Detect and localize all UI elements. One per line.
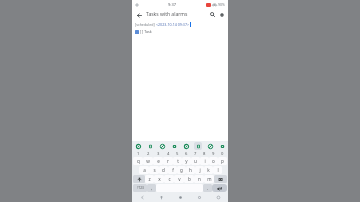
staticText: b	[188, 176, 191, 182]
button[interactable]: n	[194, 175, 204, 183]
staticText: t	[177, 158, 179, 164]
staticText: 4	[167, 151, 170, 157]
button[interactable]: u	[191, 157, 200, 165]
staticText: s	[153, 167, 156, 173]
button[interactable]: o	[209, 157, 218, 165]
button[interactable]: Emoji suggestion	[218, 142, 226, 150]
button[interactable]: 2	[143, 150, 153, 157]
staticText: w	[146, 158, 150, 164]
button[interactable]: h	[186, 166, 195, 174]
button[interactable]: Resize	[209, 193, 228, 202]
button[interactable]: e	[153, 157, 163, 165]
button[interactable]: 6	[182, 150, 191, 157]
button[interactable]: Emoji suggestion	[170, 142, 178, 150]
staticText: 8	[203, 151, 206, 157]
button[interactable]: 3	[153, 150, 163, 157]
button[interactable]: s	[149, 166, 159, 174]
staticText: d	[162, 167, 165, 173]
staticText: .	[207, 185, 209, 191]
button[interactable]: Keyboard switch	[132, 193, 152, 202]
button[interactable]: 9	[209, 150, 218, 157]
button[interactable]: j	[195, 166, 204, 174]
staticText: a	[143, 167, 146, 173]
staticText: 90%	[218, 2, 225, 7]
button[interactable]: 8	[200, 150, 209, 157]
staticText: Tasks with alarms	[146, 11, 188, 18]
button[interactable]: i	[200, 157, 209, 165]
button[interactable]: More options	[217, 10, 226, 19]
button[interactable]: c	[164, 175, 174, 183]
button[interactable]: Emoji suggestion	[146, 142, 154, 150]
staticText: [scheduled]	[135, 22, 156, 27]
button[interactable]: p	[218, 157, 227, 165]
staticText: ?123	[137, 186, 144, 190]
staticText: 1	[137, 151, 140, 157]
button[interactable]: Emoji suggestion	[134, 142, 142, 150]
button[interactable]: d	[159, 166, 168, 174]
staticText: ,	[151, 185, 153, 191]
button[interactable]: x	[154, 175, 164, 183]
button[interactable]: l	[213, 166, 222, 174]
staticText: v	[178, 176, 181, 182]
button[interactable]: m	[204, 175, 214, 183]
button[interactable]: Backspace	[214, 175, 227, 183]
button[interactable]: Emoji suggestion	[182, 142, 190, 150]
staticText: e	[157, 158, 160, 164]
staticText: c	[168, 176, 171, 182]
button[interactable]: b	[184, 175, 194, 183]
staticText: [ ] Task	[140, 29, 152, 34]
staticText: 9:37	[168, 2, 176, 7]
button[interactable]: k	[204, 166, 213, 174]
button[interactable]: Back	[134, 10, 144, 20]
staticText: f	[172, 167, 174, 173]
button[interactable]: t	[173, 157, 182, 165]
button[interactable]: Toggle task	[135, 30, 139, 34]
button[interactable]: q	[133, 157, 143, 165]
staticText: m	[207, 176, 212, 182]
staticText: 6	[185, 151, 188, 157]
staticText: y	[185, 158, 188, 164]
button[interactable]: v	[174, 175, 184, 183]
button[interactable]: Emoji suggestion	[158, 142, 166, 150]
staticText: 9	[212, 151, 215, 157]
staticText: p	[221, 158, 224, 164]
button[interactable]: f	[168, 166, 177, 174]
staticText: 0	[221, 151, 224, 157]
button[interactable]: Enter	[212, 184, 227, 192]
staticText: <2023-10-14 09:37>	[156, 22, 189, 27]
button[interactable]: Shift	[133, 175, 145, 183]
button[interactable]: g	[177, 166, 186, 174]
button[interactable]: Home	[171, 193, 190, 202]
button[interactable]: y	[182, 157, 191, 165]
button[interactable]: z	[145, 175, 154, 183]
button[interactable]: Back	[152, 193, 171, 202]
staticText: r	[167, 158, 169, 164]
button[interactable]: Emoji suggestion	[194, 142, 202, 150]
staticText: 5	[176, 151, 179, 157]
button[interactable]: Emoji suggestion	[206, 142, 214, 150]
button[interactable]: a	[139, 166, 149, 174]
button[interactable]: r	[163, 157, 173, 165]
button[interactable]: Search	[208, 10, 217, 19]
staticText: i	[204, 158, 206, 164]
button[interactable]: 7	[191, 150, 200, 157]
button[interactable]: ?123	[133, 184, 147, 192]
staticText: g	[180, 167, 183, 173]
staticText: u	[194, 158, 197, 164]
staticText: 3	[157, 151, 160, 157]
button[interactable]: Recents	[190, 193, 209, 202]
staticText: l	[217, 167, 219, 173]
button[interactable]: 5	[173, 150, 182, 157]
button[interactable]: Period	[203, 184, 212, 192]
staticText: k	[207, 167, 210, 173]
button[interactable]: 0	[218, 150, 227, 157]
button[interactable]: w	[143, 157, 153, 165]
button[interactable]: 4	[163, 150, 173, 157]
button[interactable]: 1	[133, 150, 143, 157]
staticText: h	[189, 167, 192, 173]
staticText: q	[137, 158, 140, 164]
button[interactable]: Comma	[147, 184, 156, 192]
staticText: z	[148, 176, 151, 182]
staticText: o	[212, 158, 215, 164]
